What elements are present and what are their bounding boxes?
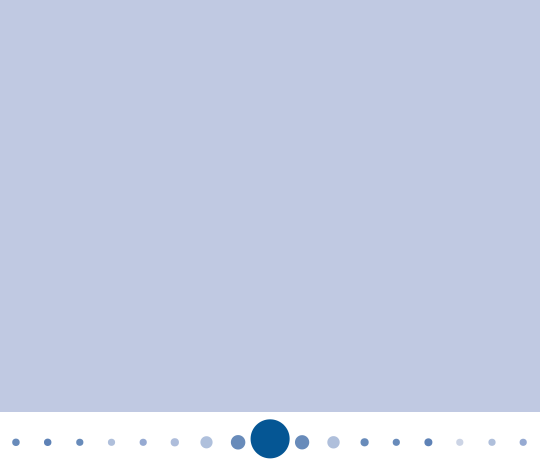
button[interactable]: Page 17 (520, 439, 527, 446)
button[interactable]: Page 9, current page (251, 419, 290, 458)
button[interactable]: Page 6 (171, 438, 179, 446)
button[interactable]: Page 8 (231, 435, 245, 450)
button[interactable]: Page 5 (140, 439, 147, 446)
button[interactable]: Page 14 (424, 438, 432, 446)
button[interactable]: Page 11 (327, 436, 340, 448)
button[interactable]: Page 15 (456, 439, 463, 446)
button[interactable]: Page 2 (44, 439, 51, 446)
button[interactable]: Page 12 (360, 438, 369, 446)
button[interactable]: Page 13 (393, 439, 400, 446)
button[interactable]: Page 1 (12, 439, 20, 446)
button[interactable]: Page 3 (76, 439, 83, 446)
button[interactable]: Page 7 (200, 436, 213, 448)
button[interactable]: Page 4 (108, 439, 115, 446)
button[interactable]: Page 16 (488, 439, 496, 446)
button[interactable]: Page 10 (295, 435, 309, 449)
